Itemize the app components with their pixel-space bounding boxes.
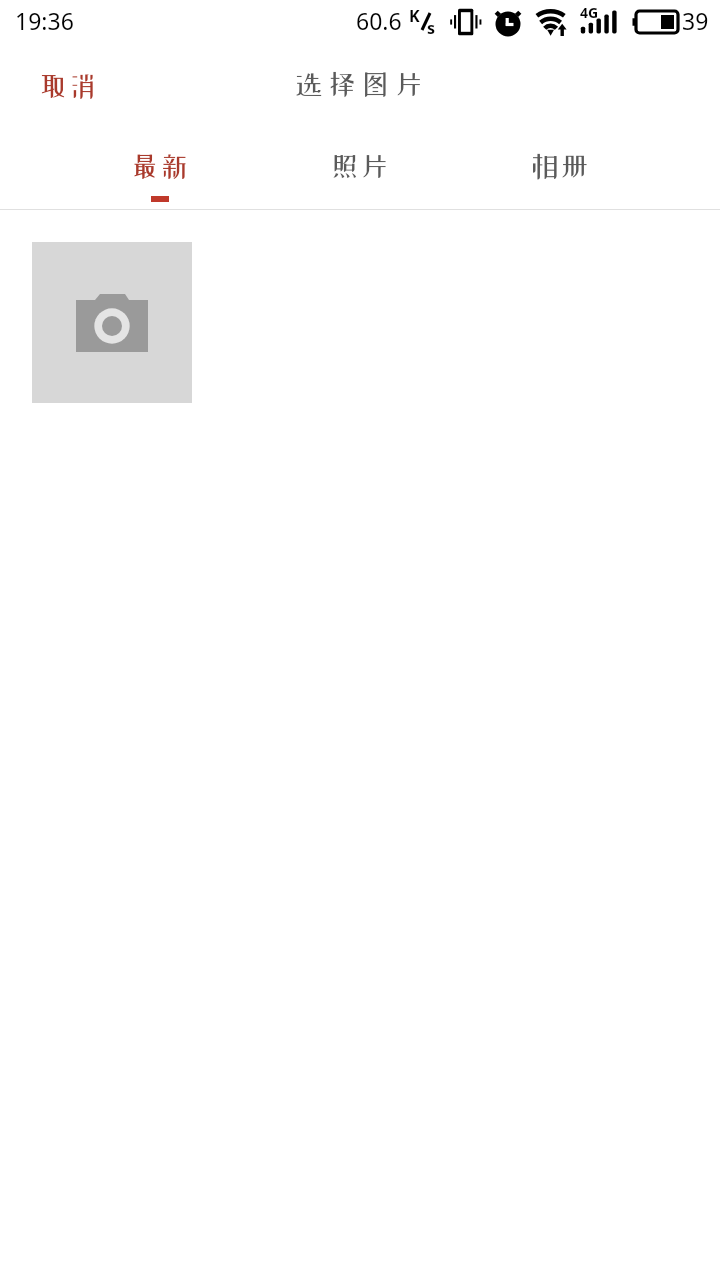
button[interactable]: 最新 xyxy=(60,129,260,209)
button[interactable]: 相册 xyxy=(460,129,660,209)
staticText: 照片 xyxy=(330,151,390,180)
button[interactable]: 取消 xyxy=(0,41,136,129)
staticText: 19:36 xyxy=(15,5,74,36)
staticText: 60.6 xyxy=(356,5,402,36)
staticText: K xyxy=(409,5,420,27)
staticText: s xyxy=(427,17,436,39)
button[interactable]: Take photo xyxy=(32,242,192,403)
staticText: 取消 xyxy=(38,71,98,100)
staticText: 相册 xyxy=(530,151,590,180)
staticText: 4G xyxy=(580,3,599,22)
staticText: 选择图片 xyxy=(294,69,428,98)
staticText: 39 xyxy=(682,5,709,36)
staticText: 最新 xyxy=(130,151,190,180)
button[interactable]: 照片 xyxy=(260,129,460,209)
